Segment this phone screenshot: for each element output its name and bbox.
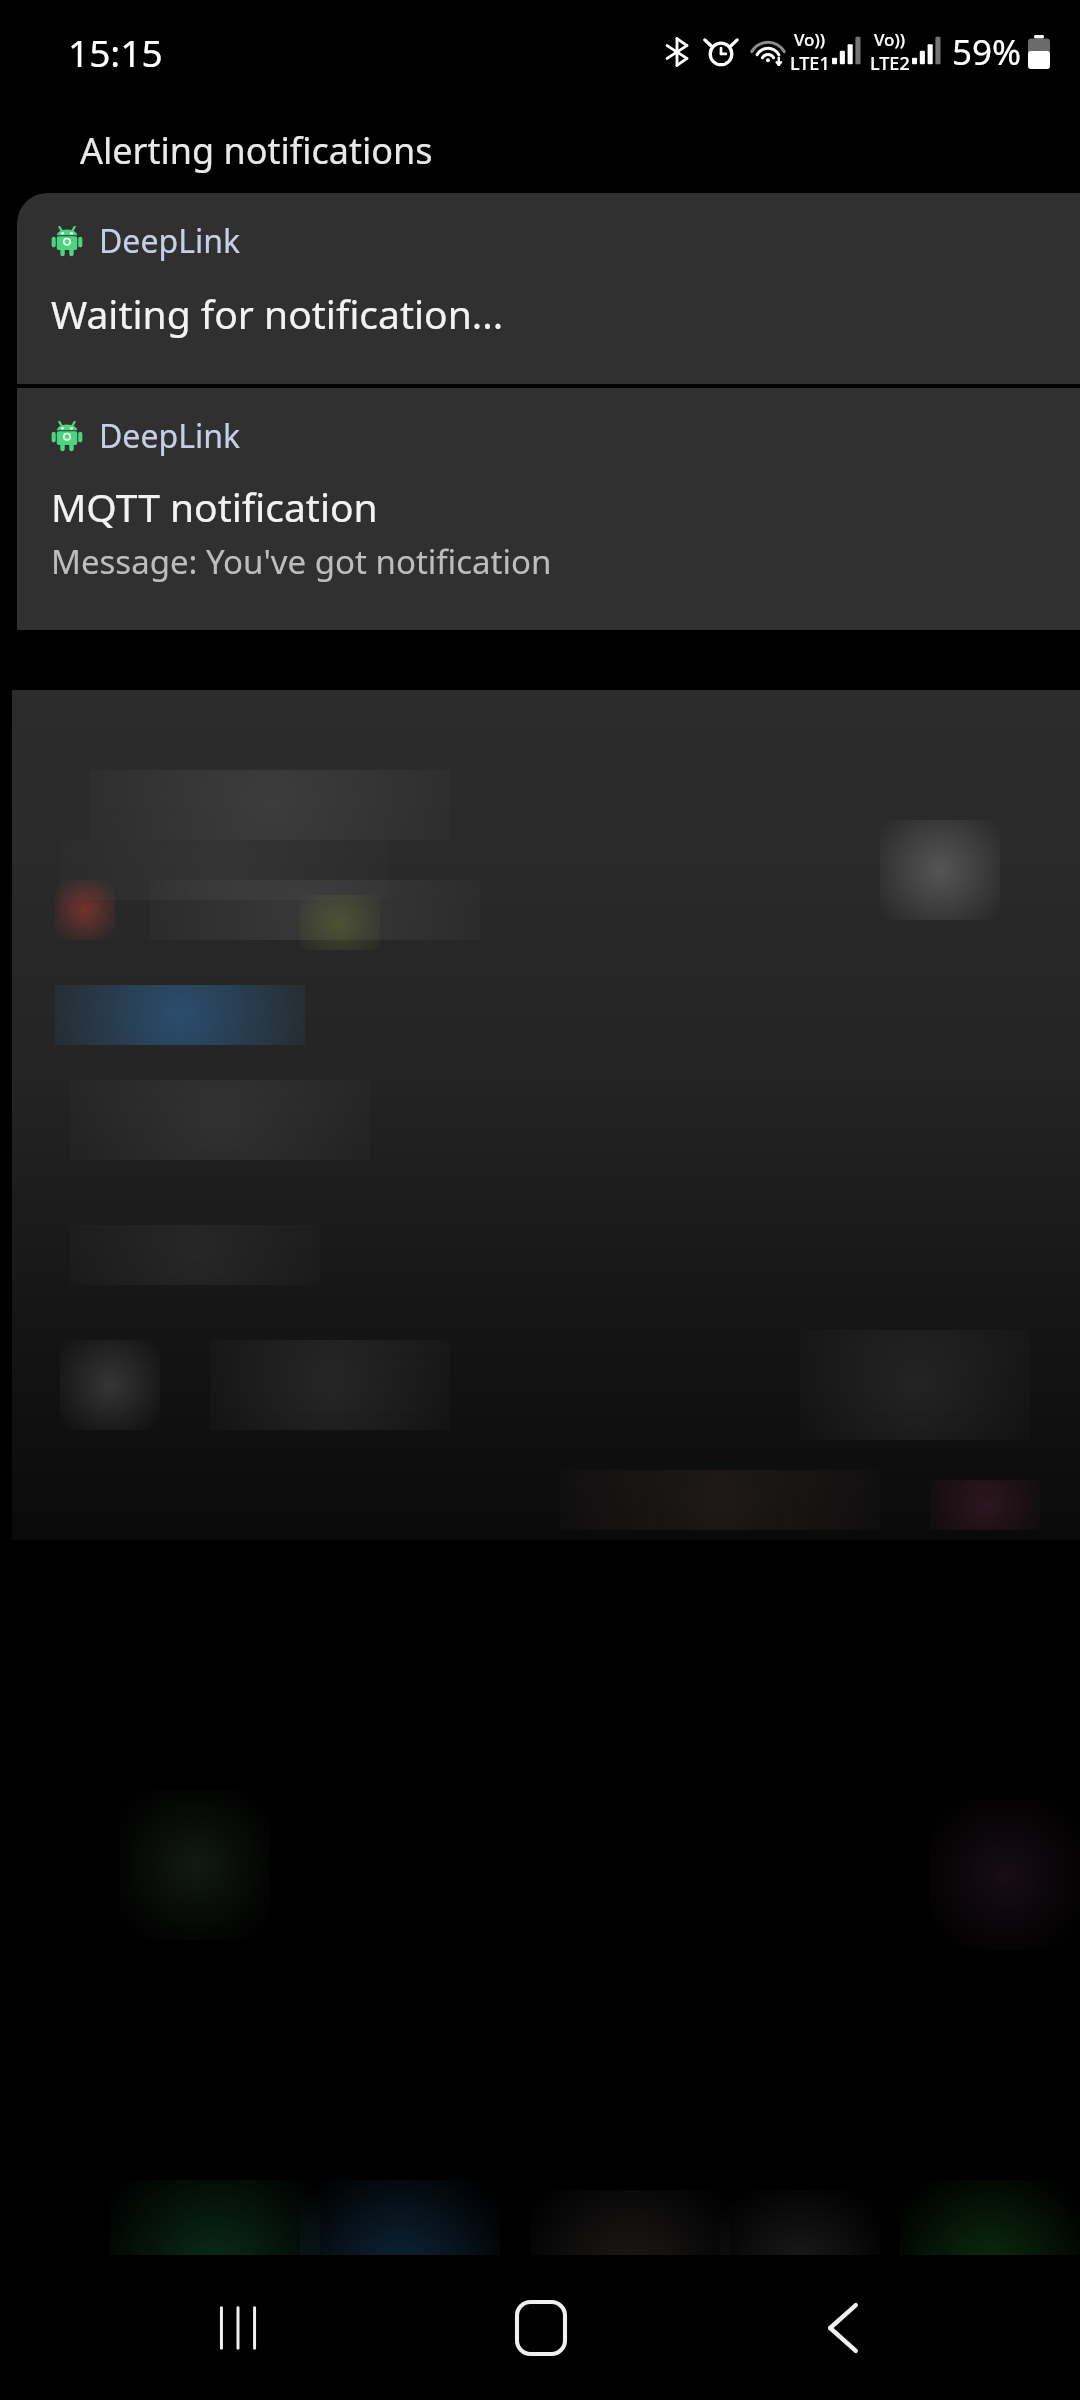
button[interactable]: DeepLink xyxy=(17,388,1080,630)
staticText: Message: You've got notification xyxy=(51,539,552,584)
button[interactable]: Home xyxy=(463,2255,618,2400)
staticText: Waiting for notification... xyxy=(51,287,504,340)
button[interactable]: Back xyxy=(765,2255,920,2400)
button[interactable]: DeepLink xyxy=(17,193,1080,384)
staticText: LTE1 xyxy=(790,51,830,76)
staticText: Vo)) xyxy=(794,28,826,51)
staticText: LTE2 xyxy=(870,51,910,76)
staticText: DeepLink xyxy=(99,414,241,458)
staticText: Alerting notifications xyxy=(80,126,433,175)
staticText: 59% xyxy=(952,28,1022,76)
staticText: Vo)) xyxy=(874,28,906,51)
staticText: DeepLink xyxy=(99,219,241,263)
staticText: 15:15 xyxy=(68,27,163,77)
button[interactable]: Recent apps xyxy=(160,2255,315,2400)
staticText: MQTT notification xyxy=(51,480,378,533)
